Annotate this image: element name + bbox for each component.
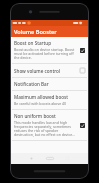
button[interactable]: Maximum allowed boost	[10, 91, 89, 109]
staticText: Non uniform boost	[14, 113, 56, 119]
staticText: Boost on Startup	[14, 40, 52, 46]
button[interactable]: Notification Bar	[10, 78, 89, 90]
staticText: Maximum allowed boost	[14, 94, 69, 100]
staticText: Volume Booster	[14, 28, 57, 36]
staticText: Show volume control	[14, 68, 61, 74]
button[interactable]: Boost on Startup	[10, 37, 89, 63]
staticText: Be careful with boosts above 40	[14, 101, 67, 106]
button[interactable]: Back	[27, 154, 36, 163]
staticText: Boost audio on device startup. Boost mus…	[14, 47, 76, 60]
button[interactable]: Enabled	[79, 122, 86, 129]
staticText: Notification Bar	[14, 81, 49, 87]
button[interactable]: Non uniform boost	[10, 110, 89, 140]
button[interactable]: Enabled	[79, 47, 86, 54]
button[interactable]: Disabled	[79, 67, 86, 74]
button[interactable]: Home	[43, 154, 57, 163]
staticText: This mode handles low and high frequenci…	[14, 120, 76, 137]
button[interactable]: Show volume control	[10, 64, 89, 77]
